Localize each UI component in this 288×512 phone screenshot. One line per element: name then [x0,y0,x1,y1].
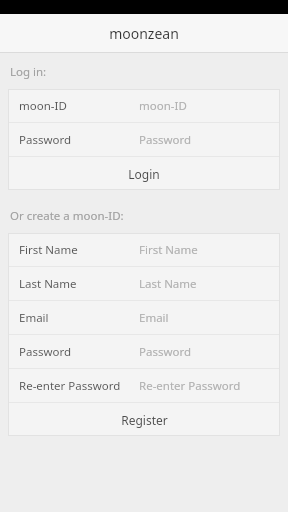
button[interactable]: Password [8,123,280,156]
staticText: moonzean [109,24,179,43]
staticText: Last Name [19,276,77,292]
staticText: Log in: [10,64,47,80]
staticText: Last Name [139,276,197,292]
button[interactable]: Register [8,403,280,436]
button[interactable]: Login [8,157,280,190]
staticText: Re-enter Password [139,378,241,394]
staticText: moon-ID [19,98,67,114]
staticText: Re-enter Password [19,378,121,394]
staticText: Email [139,310,169,326]
staticText: Password [19,344,72,360]
staticText: Password [19,132,72,148]
button[interactable]: Email [8,301,280,334]
staticText: First Name [139,242,198,258]
staticText: Password [139,132,192,148]
staticText: Email [19,310,49,326]
staticText: Register [121,412,168,428]
button[interactable]: First Name [8,233,280,266]
button[interactable]: moon-ID [8,89,280,122]
button[interactable]: Password [8,335,280,368]
staticText: Password [139,344,192,360]
staticText: First Name [19,242,78,258]
staticText: Login [128,166,160,182]
staticText: moon-ID [139,98,187,114]
button[interactable]: Last Name [8,267,280,300]
staticText: Or create a moon-ID: [10,208,124,224]
button[interactable]: Re-enter Password [8,369,280,402]
